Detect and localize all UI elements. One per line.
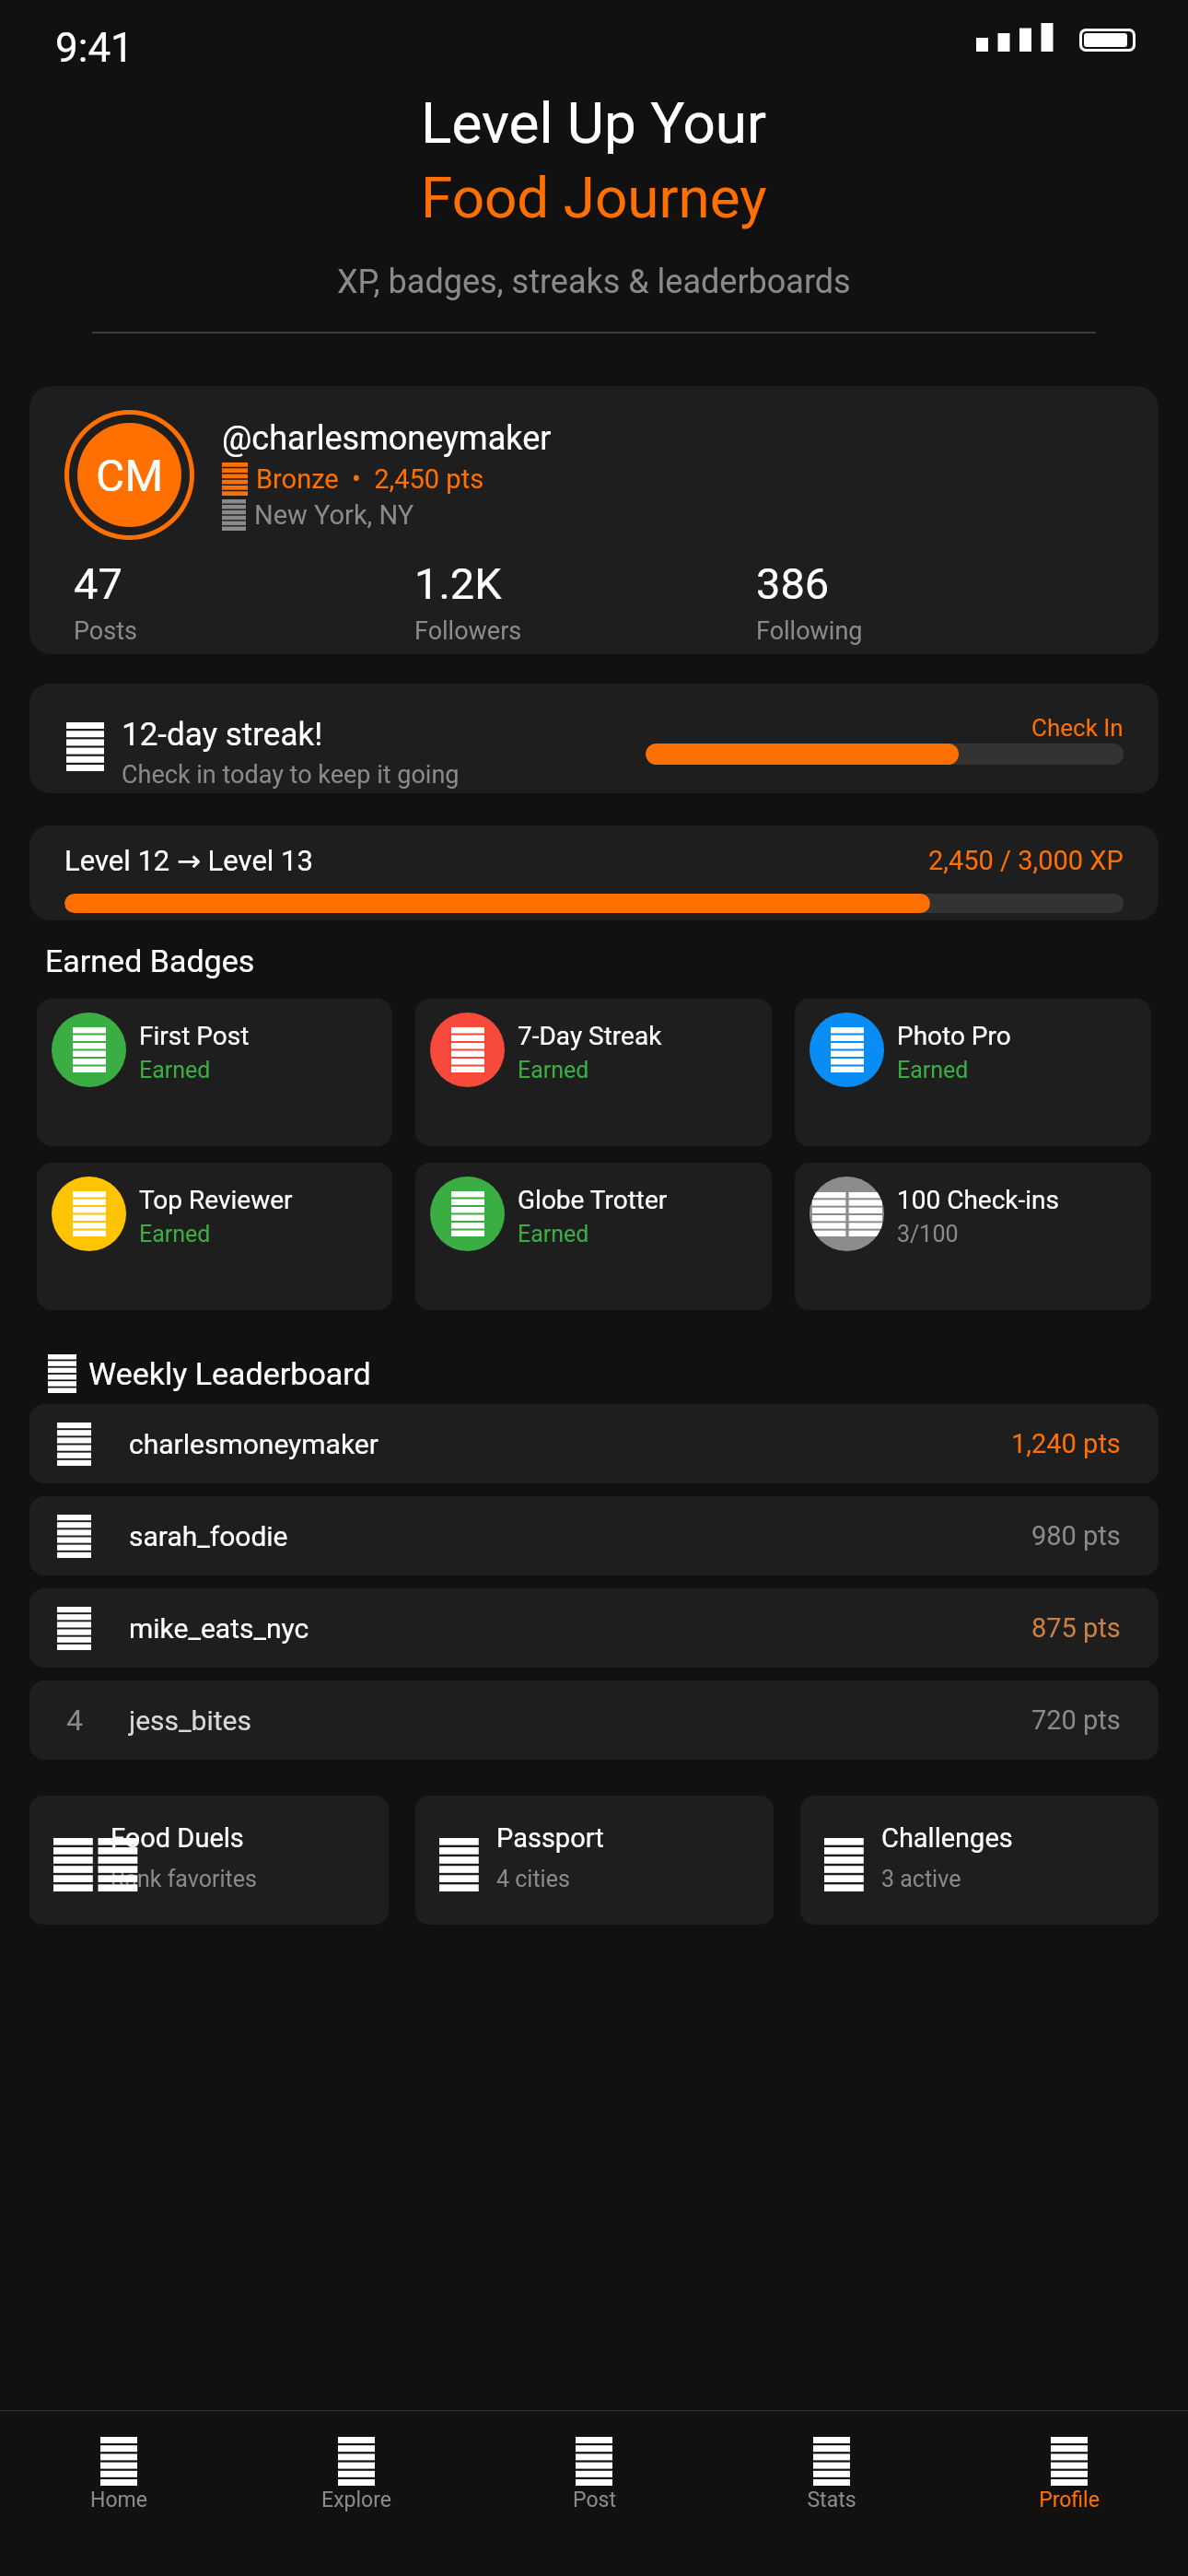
staticText: Food Duels	[111, 1822, 244, 1854]
button[interactable]: 12-day streak!	[29, 684, 1159, 793]
staticText: 100 Check-ins	[897, 1185, 1059, 1215]
staticText: mike_eats_nyc	[129, 1612, 309, 1645]
staticText: charlesmoneymaker	[129, 1428, 379, 1460]
staticText: Food Journey	[421, 164, 767, 231]
staticText: Check In	[1031, 714, 1124, 742]
staticText: CM	[96, 450, 164, 501]
staticText: Level 12 → Level 13	[64, 844, 313, 877]
button[interactable]: Food Duels	[29, 1796, 389, 1925]
staticText: 12-day streak!	[122, 716, 323, 754]
staticText: Photo Pro	[897, 1021, 1011, 1051]
staticText: Home	[90, 2488, 147, 2512]
staticText: Profile	[1039, 2488, 1100, 2512]
staticText: Check in today to keep it going	[122, 760, 460, 790]
staticText: Challenges	[881, 1822, 1013, 1854]
button[interactable]: Stats	[713, 2411, 950, 2576]
staticText: Level Up Your	[421, 89, 767, 157]
staticText: 3/100	[897, 1221, 959, 1247]
staticText: First Post	[139, 1021, 250, 1051]
staticText: 1,240 pts	[1011, 1428, 1121, 1459]
staticText: 3 active	[881, 1866, 961, 1892]
staticText: XP, badges, streaks & leaderboards	[337, 263, 851, 301]
staticText: Bronze • 2,450 pts	[256, 463, 484, 495]
staticText: jess_bites	[129, 1704, 251, 1737]
button[interactable]: Profile	[950, 2411, 1188, 2576]
button[interactable]: charlesmoneymaker	[29, 1404, 1159, 1483]
staticText: Rank favorites	[111, 1866, 257, 1892]
staticText: Weekly Leaderboard	[88, 1355, 371, 1392]
staticText: 9:41	[55, 24, 134, 72]
staticText: Earned	[139, 1221, 211, 1247]
staticText: Earned	[139, 1057, 211, 1083]
staticText: Following	[756, 616, 863, 646]
staticText: Posts	[74, 616, 137, 646]
staticText: New York, NY	[254, 499, 414, 531]
staticText: 4	[66, 1703, 83, 1738]
button[interactable]: Passport	[415, 1796, 774, 1925]
button[interactable]: Globe Trotter	[415, 1163, 772, 1310]
staticText: sarah_foodie	[129, 1520, 288, 1552]
staticText: 980 pts	[1031, 1520, 1121, 1551]
button[interactable]: 7-Day Streak	[415, 999, 772, 1146]
button[interactable]: 4	[29, 1680, 1159, 1760]
staticText: 7-Day Streak	[518, 1021, 662, 1051]
staticText: Post	[573, 2488, 616, 2512]
button[interactable]: Post	[475, 2411, 713, 2576]
staticText: 2,450 / 3,000 XP	[928, 845, 1124, 876]
staticText: Globe Trotter	[518, 1185, 668, 1215]
staticText: Explore	[321, 2488, 391, 2512]
button[interactable]: mike_eats_nyc	[29, 1588, 1159, 1668]
staticText: Earned	[897, 1057, 969, 1083]
staticText: Top Reviewer	[139, 1185, 293, 1215]
staticText: Passport	[496, 1822, 604, 1854]
button[interactable]: sarah_foodie	[29, 1496, 1159, 1575]
button[interactable]: Challenges	[800, 1796, 1159, 1925]
button[interactable]: 100 Check-ins	[795, 1163, 1151, 1310]
staticText: Earned	[518, 1221, 589, 1247]
staticText: 47	[74, 558, 122, 609]
staticText: Earned Badges	[45, 943, 255, 979]
button[interactable]: Top Reviewer	[37, 1163, 392, 1310]
staticText: 386	[756, 558, 830, 609]
staticText: Followers	[414, 616, 522, 646]
button[interactable]: Explore	[238, 2411, 475, 2576]
staticText: 4 cities	[496, 1866, 570, 1892]
button[interactable]: First Post	[37, 999, 392, 1146]
button[interactable]: Home	[0, 2411, 238, 2576]
staticText: 875 pts	[1031, 1612, 1121, 1644]
staticText: Earned	[518, 1057, 589, 1083]
button[interactable]: Photo Pro	[795, 999, 1151, 1146]
staticText: 720 pts	[1031, 1704, 1121, 1736]
staticText: Stats	[807, 2488, 856, 2512]
staticText: 1.2K	[414, 558, 502, 609]
staticText: @charlesmoneymaker	[222, 419, 552, 458]
